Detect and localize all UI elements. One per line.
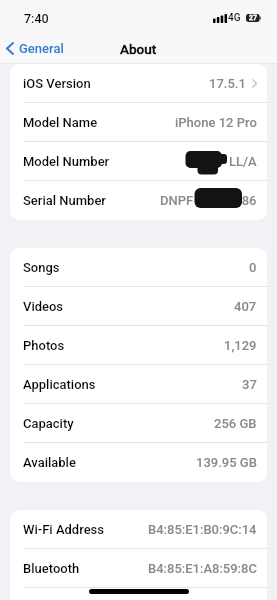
button[interactable]: Capacity [10, 404, 267, 443]
staticText: 139.95 GB [196, 455, 257, 470]
button[interactable]: Modem Firmware [10, 588, 267, 600]
staticText: Bluetooth [23, 561, 80, 576]
staticText: 7:40 [24, 11, 49, 26]
button[interactable]: Serial Number [10, 181, 267, 220]
staticText: Available [23, 455, 76, 470]
staticText: About [120, 41, 157, 57]
button[interactable]: Photos [10, 326, 267, 365]
button[interactable]: General [6, 41, 68, 56]
staticText: Wi-Fi Address [23, 522, 104, 537]
button[interactable]: Model Number [10, 142, 267, 181]
button[interactable]: Applications [10, 365, 267, 404]
staticText: DNPF 86 [160, 193, 257, 208]
staticText: iPhone 12 Pro [175, 115, 257, 130]
staticText: B4:85:E1:A8:59:8C [148, 561, 257, 576]
staticText: 17.5.1 [209, 76, 246, 91]
staticText: General [19, 41, 64, 56]
staticText: 1,129 [224, 338, 257, 353]
staticText: Capacity [23, 416, 74, 431]
staticText: 37 [242, 377, 257, 392]
button[interactable]: Model Name [10, 103, 267, 142]
staticText: B4:85:E1:B0:9C:14 [148, 522, 257, 537]
button[interactable]: Bluetooth [10, 549, 267, 588]
staticText: Songs [23, 260, 60, 275]
staticText: iOS Version [23, 76, 91, 91]
staticText: LL/A [229, 154, 257, 169]
staticText: 0 [249, 260, 257, 275]
staticText: Applications [23, 377, 96, 392]
staticText: 407 [234, 299, 257, 314]
staticText: Videos [23, 299, 64, 314]
staticText: Model Name [23, 115, 98, 130]
button[interactable]: Wi-Fi Address [10, 510, 267, 549]
button[interactable]: Songs [10, 248, 267, 287]
staticText: Serial Number [23, 193, 106, 208]
staticText: Model Number [23, 154, 110, 169]
staticText: Photos [23, 338, 65, 353]
button[interactable]: Available [10, 443, 267, 482]
button[interactable]: Videos [10, 287, 267, 326]
staticText: 4G [228, 12, 241, 24]
staticText: 256 GB [214, 416, 257, 431]
staticText: 27 [249, 14, 257, 22]
button[interactable]: iOS Version [10, 64, 267, 103]
